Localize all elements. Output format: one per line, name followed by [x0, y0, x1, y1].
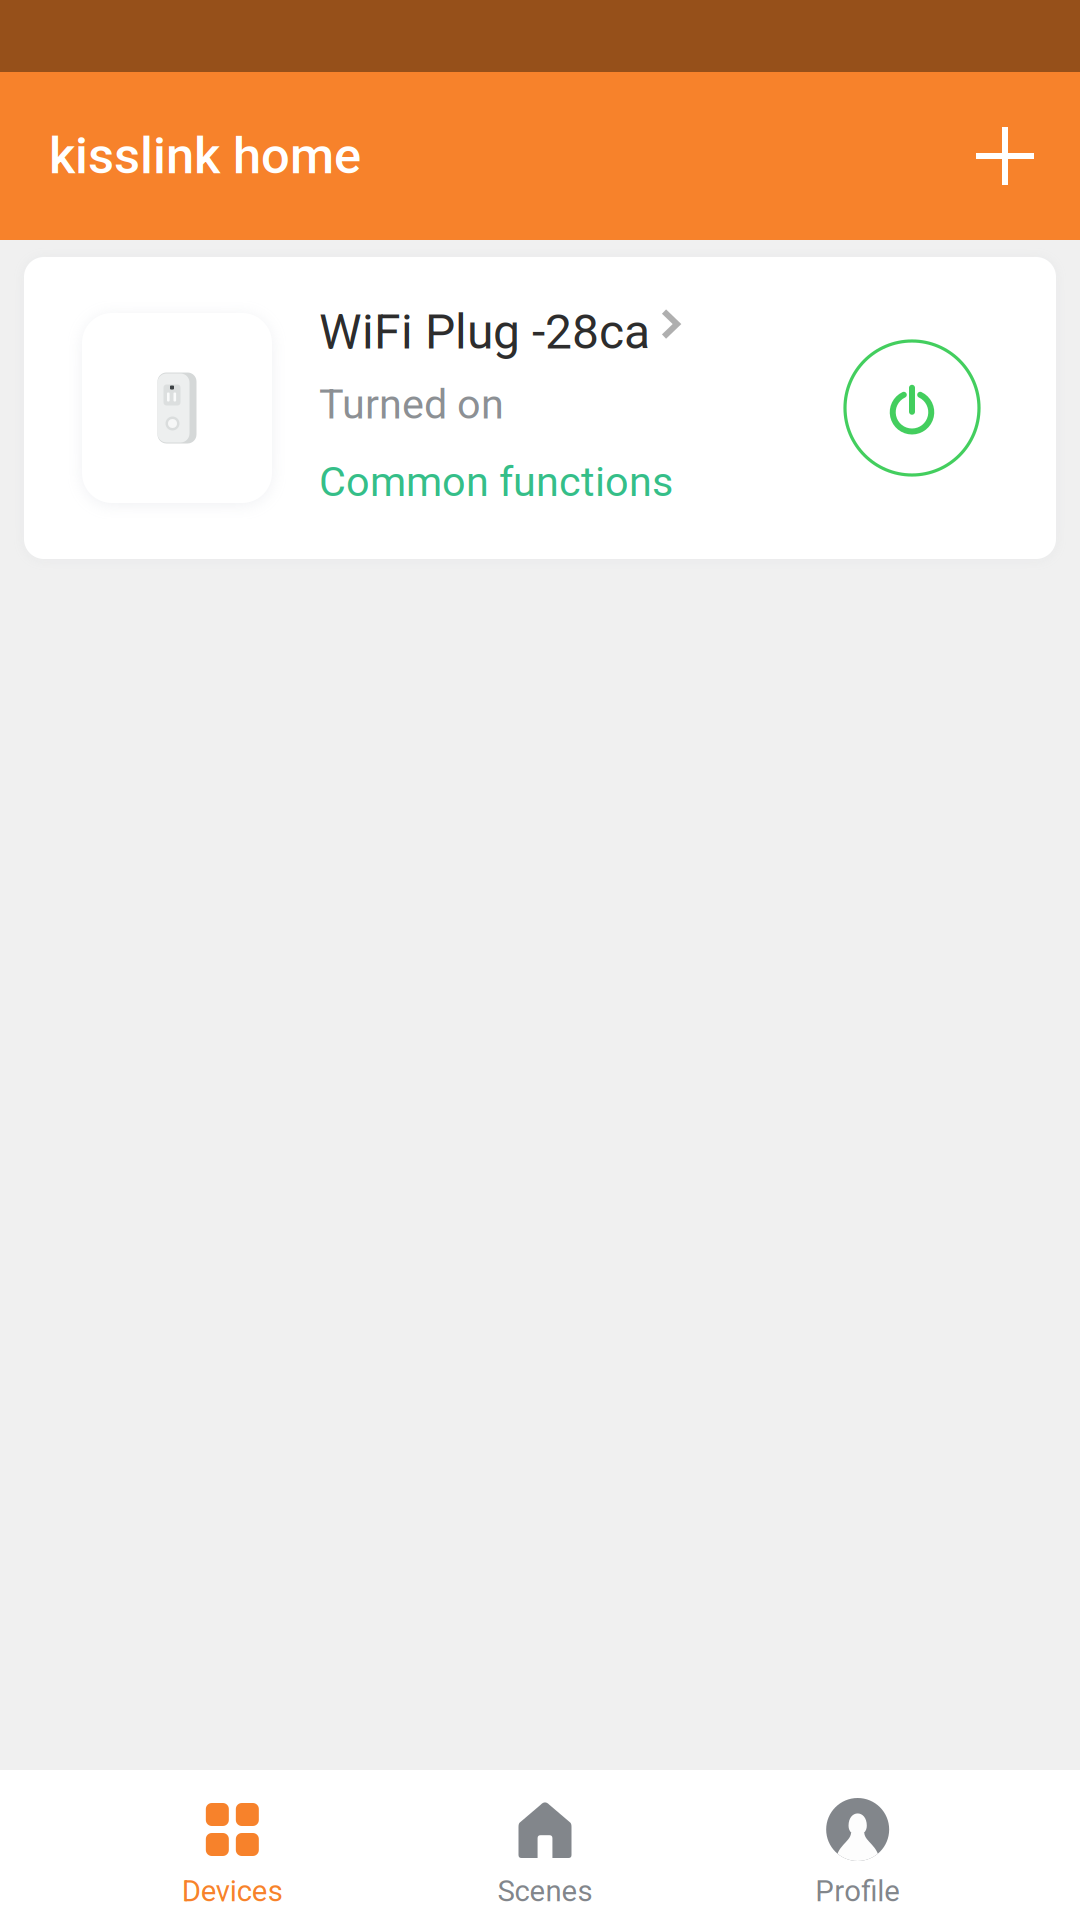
button[interactable]: Toggle power	[845, 341, 1056, 475]
staticText: WiFi Plug -28ca	[319, 304, 650, 360]
button[interactable]: Common functions	[319, 458, 673, 506]
staticText: Common functions	[319, 458, 673, 506]
staticText: kisslink home	[49, 126, 361, 186]
staticText: Turned on	[319, 380, 504, 429]
staticText: Scenes	[497, 1874, 592, 1908]
button[interactable]: Scenes	[389, 1770, 701, 1920]
button[interactable]: WiFi Plug -28ca	[319, 304, 680, 360]
staticText: Devices	[182, 1874, 283, 1908]
staticText: Profile	[815, 1874, 900, 1908]
button[interactable]: Devices	[76, 1770, 389, 1920]
button[interactable]: WiFi Plug device	[24, 313, 319, 503]
button[interactable]: Add device	[956, 105, 1054, 207]
button[interactable]: Profile	[701, 1770, 1014, 1920]
